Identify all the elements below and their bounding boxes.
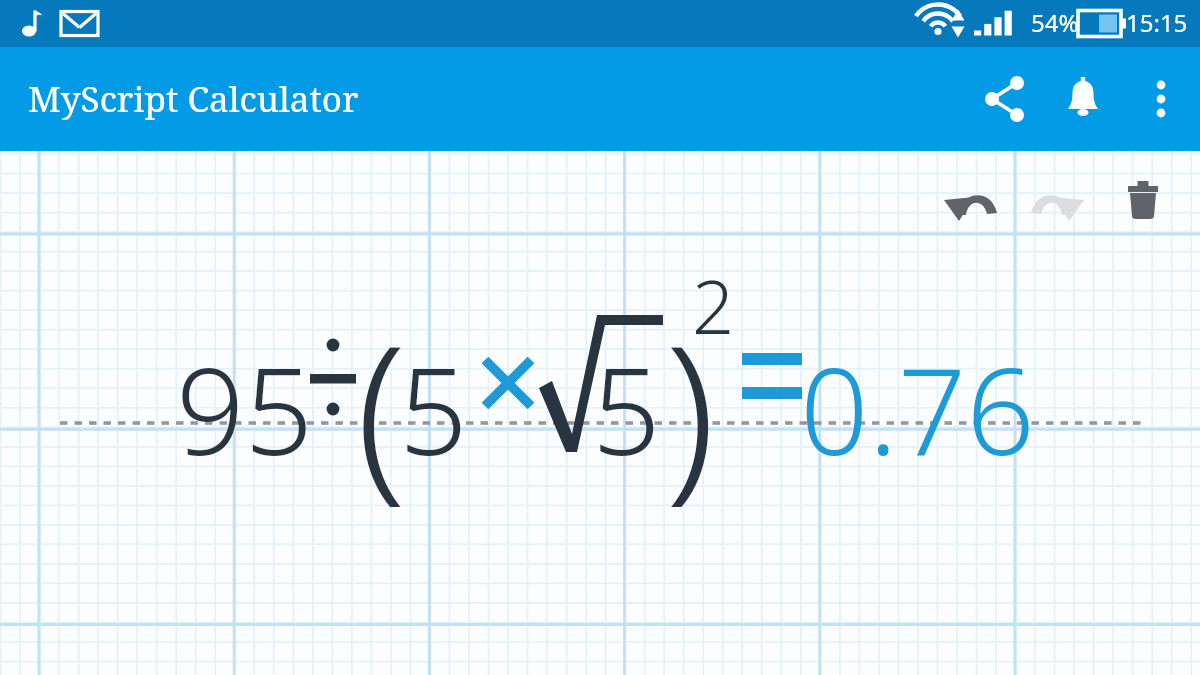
button[interactable]: Delete <box>1100 158 1186 244</box>
staticText: 5 <box>592 327 661 490</box>
button[interactable]: Share <box>966 60 1044 138</box>
staticText: 54% <box>1031 6 1079 39</box>
staticText: 2 <box>692 255 735 356</box>
button[interactable]: Notifications <box>1044 60 1122 138</box>
staticText: MyScript Calculator <box>28 75 359 123</box>
staticText: ( <box>356 283 407 531</box>
staticText: 95 <box>176 327 314 490</box>
staticText: 0.76 <box>800 327 1035 490</box>
staticText: ) <box>665 283 716 531</box>
button[interactable]: More options <box>1122 60 1200 138</box>
staticText: 5 <box>399 327 468 490</box>
button[interactable]: Redo <box>1014 158 1100 244</box>
staticText: 15:15 <box>1126 6 1188 39</box>
button[interactable]: Undo <box>928 158 1014 244</box>
